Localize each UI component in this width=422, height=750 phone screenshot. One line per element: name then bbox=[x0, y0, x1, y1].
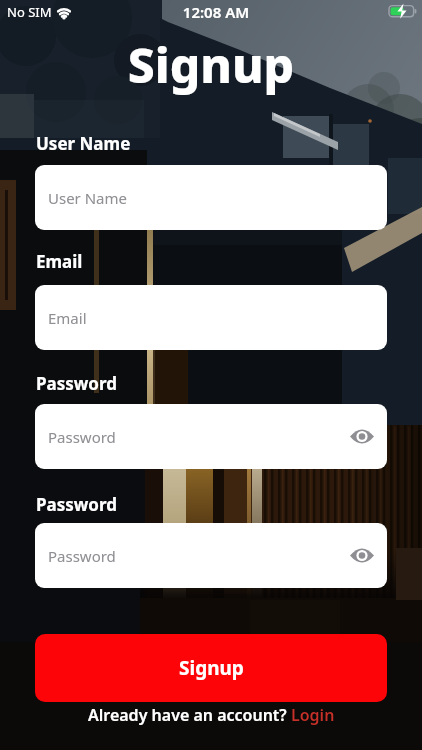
staticText: Password bbox=[48, 427, 116, 447]
button[interactable]: Login bbox=[291, 704, 335, 726]
staticText: Already have an account? bbox=[88, 704, 291, 726]
staticText: 12:08 AM bbox=[5, 2, 422, 22]
staticText: Password bbox=[36, 493, 117, 516]
staticText: User Name bbox=[36, 132, 131, 155]
staticText: Signup bbox=[0, 32, 422, 97]
staticText: Email bbox=[48, 308, 87, 328]
button[interactable]: Password bbox=[35, 523, 387, 588]
button[interactable]: User Name bbox=[35, 165, 387, 230]
staticText: User Name bbox=[48, 188, 128, 208]
button[interactable]: Signup bbox=[35, 634, 387, 702]
staticText: Email bbox=[36, 250, 83, 273]
staticText: Password bbox=[36, 372, 117, 395]
staticText: No SIM bbox=[7, 3, 52, 21]
button[interactable]: Password bbox=[35, 404, 387, 469]
staticText: Password bbox=[48, 546, 116, 566]
staticText: Signup bbox=[179, 655, 244, 681]
button[interactable]: Email bbox=[35, 285, 387, 350]
